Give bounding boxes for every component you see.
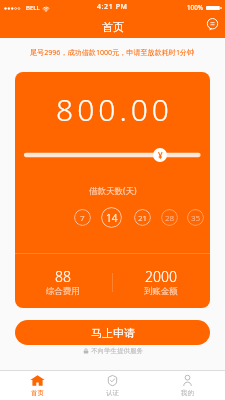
staticText: 借款天数(天) (89, 185, 137, 197)
staticText: 综合费用 (46, 286, 80, 297)
button[interactable]: 28 (161, 209, 178, 226)
button[interactable]: 2000 (119, 267, 203, 305)
button[interactable]: 首页 (0, 371, 75, 400)
staticText: 800.00 (56, 89, 173, 130)
button[interactable]: 14 (101, 207, 122, 228)
staticText: 4:21 PM (97, 2, 128, 12)
staticText: 到账金额 (144, 286, 178, 297)
staticText: 首页 (102, 20, 124, 34)
staticText: 不向学生提供服务 (91, 347, 143, 355)
button[interactable]: Messages (202, 14, 222, 34)
staticText: 尾号2996，成功借款1000元，申请至放款耗时1分钟 (30, 47, 195, 57)
button[interactable]: 我的 (150, 371, 225, 400)
staticText: 首页 (31, 389, 44, 397)
staticText: 88 (55, 267, 71, 286)
staticText: 7 (80, 212, 85, 223)
staticText: BELL (26, 4, 40, 12)
button[interactable]: 88 (21, 267, 105, 305)
button[interactable]: Amount slider (153, 148, 167, 162)
staticText: 28 (165, 212, 175, 223)
staticText: 14 (106, 211, 118, 225)
staticText: 2000 (145, 267, 177, 286)
staticText: 我的 (181, 389, 194, 397)
button[interactable]: 认证 (75, 371, 150, 400)
staticText: 马上申请 (91, 326, 135, 340)
staticText: 100% (187, 3, 204, 12)
button[interactable]: 7 (74, 209, 91, 226)
button[interactable]: 马上申请 (15, 320, 210, 345)
button[interactable]: 35 (187, 209, 204, 226)
staticText: ¥ (158, 150, 163, 161)
staticText: 认证 (106, 389, 119, 397)
staticText: 21 (138, 212, 148, 223)
button[interactable]: 21 (134, 209, 151, 226)
staticText: 35 (191, 212, 201, 223)
